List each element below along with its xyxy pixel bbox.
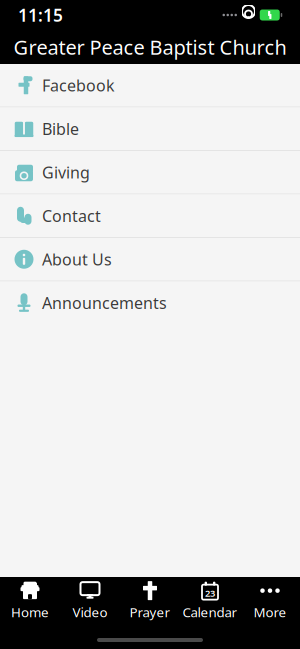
staticText: Video <box>72 603 107 621</box>
staticText: Home <box>11 603 49 621</box>
staticText: About Us <box>42 249 112 270</box>
staticText: Prayer <box>129 603 170 621</box>
staticText: Giving <box>42 162 90 183</box>
staticText: Calendar <box>182 603 237 621</box>
staticText: Announcements <box>42 292 167 313</box>
staticText: 23 <box>205 587 215 599</box>
button[interactable]: Home <box>0 575 60 627</box>
staticText: Facebook <box>42 75 115 96</box>
button[interactable]: More <box>240 575 300 627</box>
button[interactable]: Giving <box>0 151 300 194</box>
button[interactable]: Announcements <box>0 281 300 325</box>
staticText: Contact <box>42 205 101 226</box>
button[interactable]: About Us <box>0 238 300 281</box>
button[interactable]: 23 <box>180 575 240 627</box>
staticText: Greater Peace Baptist Church <box>13 34 286 60</box>
button[interactable]: Contact <box>0 194 300 238</box>
button[interactable]: Bible <box>0 107 300 151</box>
staticText: More <box>253 603 286 621</box>
button[interactable]: Prayer <box>120 575 180 627</box>
staticText: 11:15 <box>18 3 63 26</box>
button[interactable]: Facebook <box>0 64 300 107</box>
staticText: Bible <box>42 118 79 139</box>
button[interactable]: Video <box>60 575 120 627</box>
